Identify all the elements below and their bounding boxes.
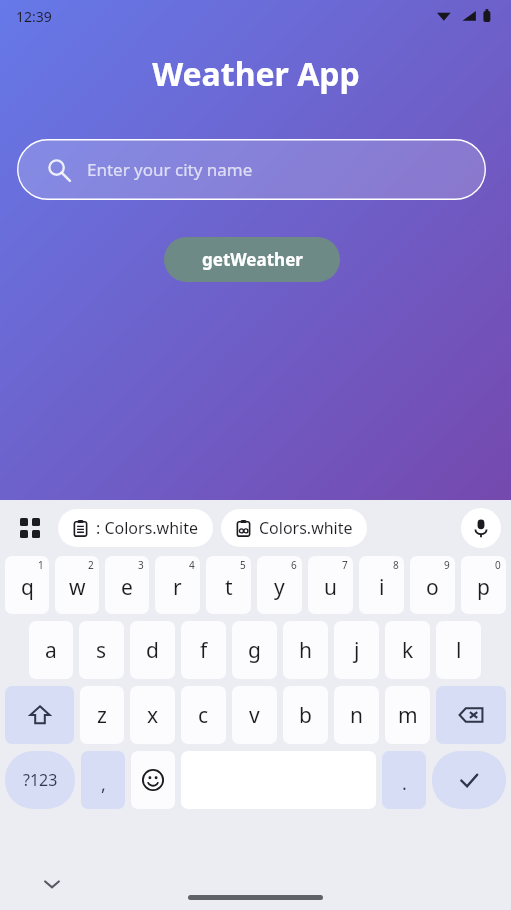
button[interactable]: t xyxy=(206,556,251,614)
staticText: 2 xyxy=(88,558,94,572)
staticText: f xyxy=(200,636,208,665)
staticText: v xyxy=(249,701,260,730)
button[interactable]: , xyxy=(81,751,125,809)
staticText: m xyxy=(398,701,418,730)
button[interactable]: f xyxy=(181,621,226,679)
staticText: Enter your city name xyxy=(87,158,253,181)
staticText: q xyxy=(21,573,34,602)
button[interactable]: c xyxy=(181,686,226,744)
staticText: getWeather xyxy=(202,248,303,271)
button[interactable]: v xyxy=(232,686,277,744)
button[interactable]: g xyxy=(232,621,277,679)
staticText: 0 xyxy=(495,558,501,572)
staticText: g xyxy=(248,636,261,665)
button[interactable]: q xyxy=(5,556,49,614)
button[interactable]: x xyxy=(130,686,175,744)
staticText: o xyxy=(426,573,439,602)
button[interactable]: Colors.white xyxy=(221,509,367,547)
staticText: x xyxy=(147,701,159,730)
staticText: 8 xyxy=(393,558,399,572)
staticText: 12:39 xyxy=(16,7,52,26)
button[interactable]: l xyxy=(436,621,481,679)
staticText: Weather App xyxy=(152,52,360,96)
button[interactable]: k xyxy=(385,621,430,679)
button[interactable]: w xyxy=(55,556,99,614)
button[interactable]: d xyxy=(130,621,175,679)
staticText: n xyxy=(350,701,363,730)
button[interactable]: s xyxy=(79,621,124,679)
staticText: b xyxy=(299,701,312,730)
button[interactable]: a xyxy=(29,621,73,679)
staticText: ?123 xyxy=(23,769,58,791)
button[interactable]: Enter your city name xyxy=(17,139,486,200)
button[interactable]: i xyxy=(359,556,404,614)
staticText: j xyxy=(354,636,360,665)
staticText: 4 xyxy=(189,558,195,572)
staticText: r xyxy=(173,573,182,602)
staticText: 1 xyxy=(38,558,44,572)
button[interactable]: Enter xyxy=(432,751,506,809)
button[interactable]: o xyxy=(410,556,455,614)
button[interactable]: Backspace xyxy=(436,686,506,744)
button[interactable]: Toolbar xyxy=(10,508,50,548)
staticText: 6 xyxy=(291,558,297,572)
button[interactable]: Shift xyxy=(5,686,74,744)
button[interactable]: r xyxy=(155,556,200,614)
button[interactable]: . xyxy=(382,751,426,809)
staticText: t xyxy=(225,573,233,602)
button[interactable]: z xyxy=(80,686,124,744)
staticText: z xyxy=(97,701,107,730)
staticText: d xyxy=(146,636,159,665)
staticText: 5 xyxy=(240,558,246,572)
button[interactable]: u xyxy=(308,556,353,614)
button[interactable]: b xyxy=(283,686,328,744)
button[interactable]: : Colors.white xyxy=(58,509,213,547)
staticText: : Colors.white xyxy=(96,517,199,539)
button[interactable]: Emoji xyxy=(131,751,175,809)
staticText: l xyxy=(456,636,462,665)
staticText: i xyxy=(379,573,385,602)
button[interactable]: getWeather xyxy=(164,237,340,282)
button[interactable]: e xyxy=(105,556,149,614)
staticText: a xyxy=(45,636,57,665)
staticText: h xyxy=(299,636,312,665)
button[interactable]: m xyxy=(385,686,430,744)
staticText: . xyxy=(402,771,407,796)
staticText: Colors.white xyxy=(259,517,353,539)
staticText: 7 xyxy=(342,558,348,572)
staticText: p xyxy=(477,573,490,602)
button[interactable]: p xyxy=(461,556,506,614)
staticText: e xyxy=(121,573,133,602)
button[interactable]: ?123 xyxy=(5,751,75,809)
button[interactable]: Voice input xyxy=(461,508,501,548)
button[interactable]: j xyxy=(334,621,379,679)
staticText: , xyxy=(101,772,106,797)
staticText: 9 xyxy=(444,558,450,572)
staticText: y xyxy=(274,573,285,602)
button[interactable]: y xyxy=(257,556,302,614)
button[interactable]: n xyxy=(334,686,379,744)
staticText: k xyxy=(402,636,414,665)
button[interactable]: Hide keyboard xyxy=(36,868,68,900)
staticText: u xyxy=(324,573,337,602)
button[interactable]: h xyxy=(283,621,328,679)
staticText: 3 xyxy=(138,558,144,572)
staticText: w xyxy=(69,573,86,602)
staticText: c xyxy=(198,701,209,730)
staticText: s xyxy=(96,636,107,665)
